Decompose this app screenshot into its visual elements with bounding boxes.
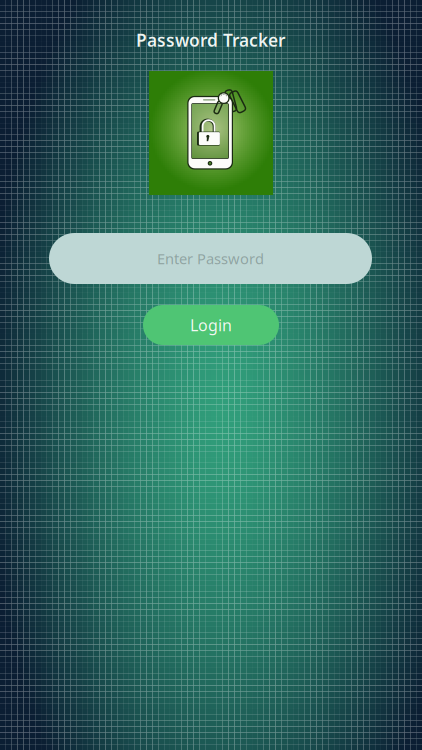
staticText: Enter Password — [157, 249, 264, 268]
button[interactable]: Enter Password — [49, 233, 372, 284]
staticText: Password Tracker — [136, 28, 286, 51]
button[interactable]: Login — [143, 305, 279, 345]
staticText: Login — [190, 314, 232, 336]
